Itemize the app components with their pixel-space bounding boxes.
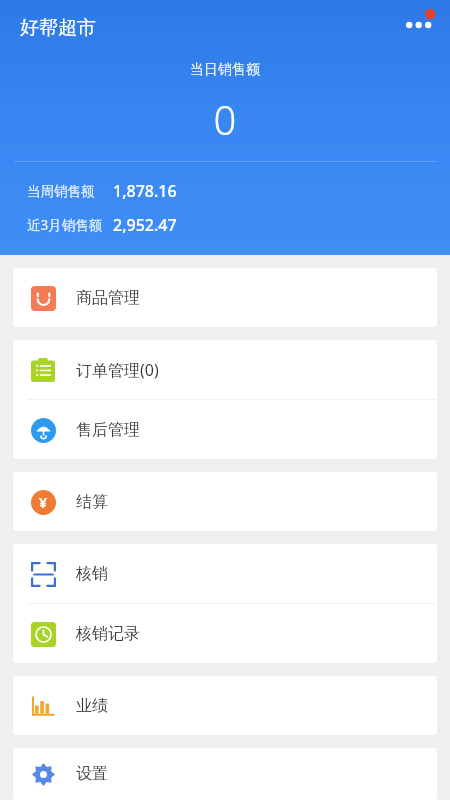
staticText: 业绩 [76, 696, 108, 716]
button[interactable]: 核销 [13, 544, 437, 603]
button[interactable]: 核销记录 [13, 604, 437, 663]
button[interactable]: 商品管理 [13, 268, 437, 327]
button[interactable]: 售后管理 [13, 400, 437, 459]
staticText: 结算 [76, 492, 108, 512]
staticText: 2,952.47 [113, 214, 177, 236]
button[interactable]: 订单管理(0) [13, 340, 437, 399]
button[interactable]: More options [398, 2, 444, 48]
staticText: 近3月销售额 [27, 216, 103, 234]
button[interactable]: 业绩 [13, 676, 437, 735]
staticText: 0 [0, 92, 450, 146]
staticText: 当日销售额 [0, 61, 450, 79]
staticText: 订单管理(0) [76, 359, 159, 381]
staticText: 核销 [76, 564, 108, 584]
staticText: 设置 [76, 764, 108, 784]
staticText: 售后管理 [76, 420, 140, 440]
staticText: ¥ [39, 493, 48, 512]
staticText: 好帮超市 [20, 16, 96, 40]
button[interactable]: ¥ [13, 472, 437, 531]
staticText: 商品管理 [76, 288, 140, 308]
staticText: 1,878.16 [113, 180, 177, 202]
staticText: 当周销售额 [27, 183, 95, 200]
staticText: 核销记录 [76, 624, 140, 644]
button[interactable]: 设置 [13, 748, 437, 800]
